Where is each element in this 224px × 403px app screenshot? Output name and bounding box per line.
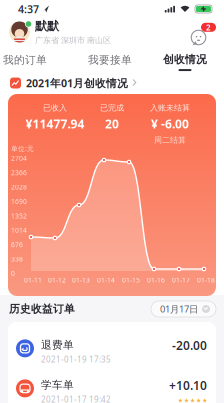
- staticText: -20.00: [172, 337, 207, 353]
- staticText: 2704: [11, 154, 27, 163]
- button[interactable]: 创收情况: [155, 51, 215, 73]
- staticText: ¥11477.94: [25, 116, 84, 132]
- staticText: 1014: [11, 226, 27, 235]
- staticText: 338: [11, 255, 23, 263]
- staticText: 01-16: [147, 276, 165, 284]
- staticText: 创收情况: [163, 53, 207, 66]
- staticText: 2: [206, 22, 211, 33]
- staticText: 我要接单: [88, 53, 132, 66]
- staticText: 01月17日: [160, 303, 198, 315]
- button[interactable]: 默默: [0, 19, 111, 45]
- staticText: 2366: [11, 168, 27, 177]
- staticText: 单位:元: [11, 144, 34, 153]
- staticText: 广东省 深圳市 南山区: [35, 35, 111, 45]
- button[interactable]: 我要接单: [80, 50, 140, 70]
- staticText: 01-13: [72, 276, 90, 284]
- staticText: 我的订单: [3, 53, 47, 66]
- staticText: 676: [11, 240, 23, 249]
- staticText: 学车单: [41, 378, 74, 391]
- staticText: +10.10: [169, 377, 207, 393]
- staticText: 0: [11, 269, 15, 278]
- staticText: 01-17: [172, 276, 190, 284]
- button[interactable]: 我的订单: [0, 50, 55, 70]
- button[interactable]: 退费单: [8, 331, 216, 371]
- staticText: 01-11: [24, 276, 42, 284]
- staticText: 20: [105, 116, 119, 132]
- staticText: 历史收益订单: [9, 302, 75, 315]
- staticText: 01-12: [48, 276, 66, 284]
- button[interactable]: 01月17日: [151, 301, 216, 317]
- staticText: 1352: [11, 211, 27, 220]
- staticText: 2021-01-17 19:42: [41, 394, 111, 403]
- button[interactable]: 2021年01月创收情况: [0, 76, 224, 90]
- staticText: 01-15: [122, 276, 140, 284]
- staticText: 已收入: [43, 103, 67, 113]
- staticText: 4:37: [18, 2, 39, 16]
- staticText: 2021-01-19 17:35: [41, 354, 111, 365]
- staticText: 2028: [11, 183, 27, 191]
- staticText: 2021年01月创收情况: [26, 76, 128, 90]
- staticText: 周二结算: [154, 135, 186, 145]
- staticText: 已完成: [100, 103, 124, 113]
- staticText: 01-18: [197, 276, 215, 284]
- button[interactable]: 学车单: [8, 371, 216, 403]
- staticText: 入账未结算: [150, 103, 190, 113]
- button[interactable]: Messages: [190, 19, 214, 45]
- staticText: 01-14: [97, 276, 115, 284]
- staticText: ¥ -6.00: [151, 116, 189, 132]
- staticText: 退费单: [41, 338, 74, 351]
- staticText: 1690: [11, 197, 27, 206]
- staticText: 默默: [35, 19, 59, 33]
